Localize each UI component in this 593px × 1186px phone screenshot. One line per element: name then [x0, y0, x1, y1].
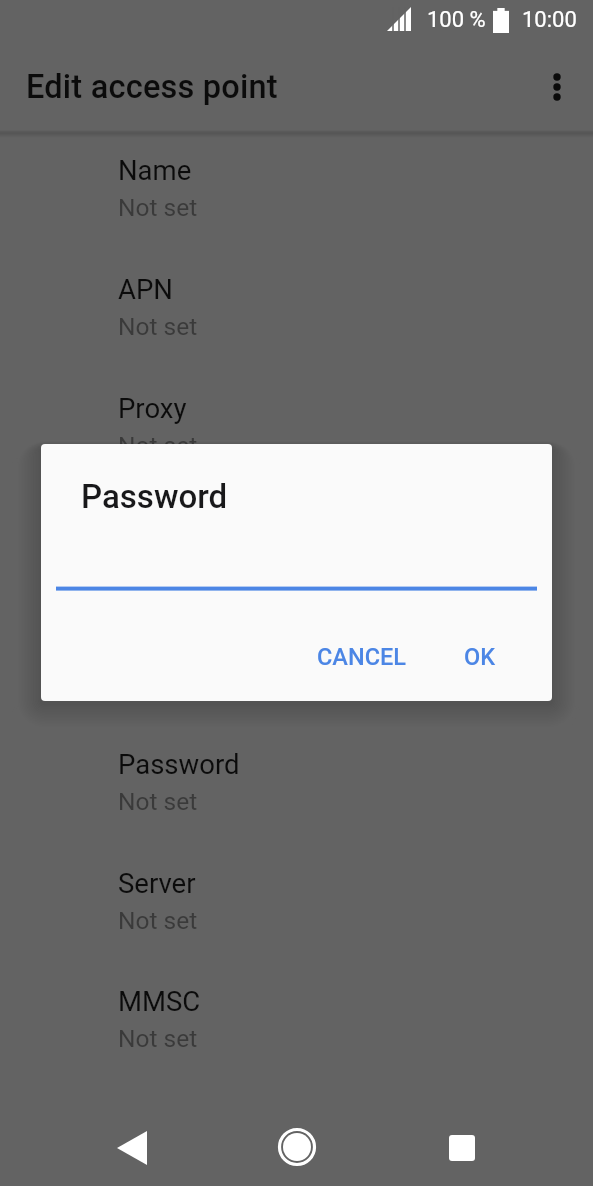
staticText: 10:00	[522, 7, 577, 33]
staticText: Not set	[118, 787, 198, 816]
button[interactable]: Home	[269, 1120, 325, 1176]
button[interactable]: Port	[0, 510, 593, 628]
button[interactable]: MMSC	[0, 985, 593, 1103]
staticText: Name	[118, 154, 192, 186]
staticText: Proxy	[118, 392, 187, 424]
button[interactable]: Server	[0, 867, 593, 985]
staticText: Not set	[118, 312, 198, 341]
button[interactable]: Dismiss dialog	[0, 0, 593, 1186]
staticText: APN	[118, 273, 173, 305]
staticText: CANCEL	[317, 643, 407, 671]
staticText: Edit access point	[26, 68, 278, 106]
staticText: Not set	[118, 431, 198, 460]
button[interactable]: CANCEL	[301, 633, 423, 681]
staticText: 100 %	[427, 7, 486, 33]
staticText: OK	[464, 643, 496, 671]
staticText: Server	[118, 867, 196, 899]
button[interactable]: Username	[0, 629, 593, 747]
button[interactable]: Recent apps	[434, 1120, 490, 1176]
staticText: Not set	[118, 1024, 198, 1053]
staticText: Password	[118, 748, 240, 780]
staticText: Not set	[118, 906, 198, 935]
staticText: Password	[81, 477, 228, 516]
button[interactable]: Back	[104, 1120, 160, 1176]
staticText: Not set	[118, 193, 198, 222]
button[interactable]: APN	[0, 273, 593, 391]
staticText: MMSC	[118, 985, 201, 1017]
button[interactable]: Password	[0, 748, 593, 866]
button[interactable]: Proxy	[0, 392, 593, 510]
button[interactable]: Name	[0, 154, 593, 272]
button[interactable]: OK	[448, 633, 512, 681]
button[interactable]: More options	[529, 59, 585, 115]
button[interactable]: Password input field	[56, 534, 537, 592]
